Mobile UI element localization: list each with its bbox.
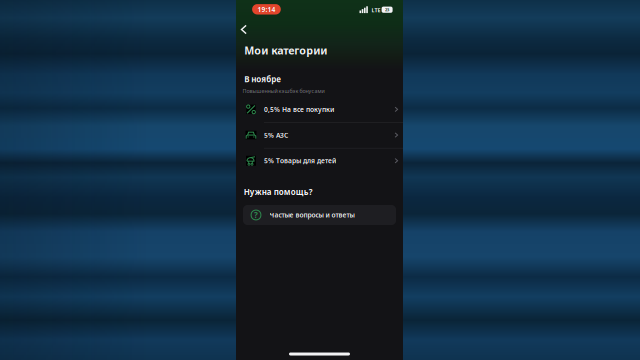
button[interactable]: 5% Товары для детей xyxy=(236,148,403,174)
button[interactable]: 0,5% На все покупки xyxy=(236,96,403,122)
staticText: 23 xyxy=(385,7,389,12)
staticText: LTE xyxy=(372,7,381,14)
staticText: ? xyxy=(254,210,258,220)
staticText: Нужна помощь? xyxy=(244,186,313,197)
staticText: Мои категории xyxy=(244,43,327,57)
staticText: Повышенный кэшбэк бонусами xyxy=(243,87,325,95)
staticText: 0,5% На все покупки xyxy=(264,105,334,114)
button[interactable]: ? xyxy=(243,205,396,225)
staticText: 5% Товары для детей xyxy=(264,156,336,165)
button[interactable]: Back xyxy=(236,20,251,38)
staticText: 19:14 xyxy=(257,5,275,14)
button[interactable]: 5% АЗС xyxy=(236,122,403,148)
staticText: 5% АЗС xyxy=(264,131,288,139)
staticText: Частые вопросы и ответы xyxy=(269,211,354,219)
staticText: В ноябре xyxy=(244,74,281,84)
